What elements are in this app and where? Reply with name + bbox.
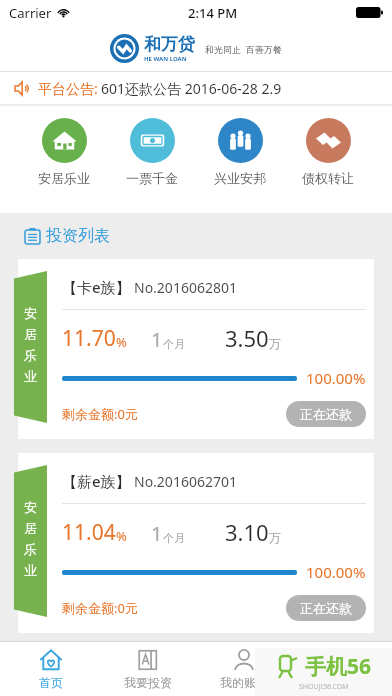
staticText: 乐: [24, 541, 37, 557]
staticText: 平台公告:: [38, 79, 98, 98]
staticText: SHOUJI56.COM: [299, 682, 349, 692]
staticText: 2:14 PM: [188, 4, 238, 22]
button[interactable]: 债权转让: [298, 118, 358, 186]
staticText: 我要投资: [124, 675, 172, 690]
staticText: 601还款公告 2016-06-28 2.9: [101, 79, 282, 98]
staticText: 万: [269, 336, 281, 351]
button[interactable]: 一票千金: [122, 118, 182, 186]
button[interactable]: Announcement: [0, 72, 392, 104]
staticText: Carrier: [9, 4, 52, 22]
button[interactable]: 我的账户: [198, 642, 290, 696]
button[interactable]: 安: [0, 453, 392, 633]
staticText: No.2016062801: [134, 278, 237, 297]
button[interactable]: 我要投资: [102, 642, 194, 696]
button[interactable]: 首页: [5, 642, 97, 696]
staticText: 剩余金额:0元: [62, 599, 138, 617]
staticText: 3.50: [225, 323, 269, 353]
staticText: 3.10: [225, 517, 269, 547]
staticText: 100.00%: [306, 562, 366, 582]
staticText: 我的账户: [220, 675, 268, 690]
staticText: 兴业安邦: [214, 170, 266, 186]
staticText: 1: [151, 326, 163, 353]
button[interactable]: 安: [0, 259, 392, 439]
staticText: 手机56: [305, 652, 372, 681]
staticText: %: [116, 527, 127, 545]
staticText: 正在还款: [300, 406, 352, 422]
button[interactable]: 安居乐业: [34, 118, 94, 186]
staticText: 更多: [329, 675, 353, 690]
staticText: 个月: [163, 531, 185, 545]
staticText: 1: [151, 520, 163, 547]
button[interactable]: 兴业安邦: [210, 118, 270, 186]
staticText: 11.70: [62, 324, 116, 353]
staticText: 和万贷: [144, 34, 195, 55]
staticText: 和光同止 百善万餐: [205, 43, 282, 55]
staticText: 业: [24, 562, 37, 578]
staticText: HE WAN LOAN: [144, 55, 187, 63]
staticText: 剩余金额:0元: [62, 405, 138, 423]
staticText: 安: [24, 499, 37, 515]
staticText: 【卡e族】: [62, 277, 131, 297]
staticText: 安居乐业: [38, 170, 90, 186]
staticText: %: [116, 333, 127, 351]
staticText: 居: [24, 520, 37, 536]
staticText: 个月: [163, 337, 185, 351]
staticText: 投资列表: [46, 226, 110, 246]
staticText: 【薪e族】: [62, 471, 131, 491]
other: Announcement: [14, 80, 31, 97]
staticText: 业: [24, 368, 37, 384]
staticText: 安: [24, 305, 37, 321]
staticText: 一票千金: [126, 170, 178, 186]
staticText: 100.00%: [306, 368, 366, 388]
staticText: 首页: [39, 675, 63, 690]
staticText: 乐: [24, 347, 37, 363]
staticText: 万: [269, 530, 281, 545]
staticText: 11.04: [62, 518, 116, 547]
button[interactable]: 正在还款: [286, 401, 366, 427]
staticText: 居: [24, 326, 37, 342]
staticText: 正在还款: [300, 600, 352, 616]
button[interactable]: 更多: [295, 642, 387, 696]
staticText: No.2016062701: [134, 472, 237, 491]
staticText: 债权转让: [302, 170, 354, 186]
button[interactable]: 正在还款: [286, 595, 366, 621]
